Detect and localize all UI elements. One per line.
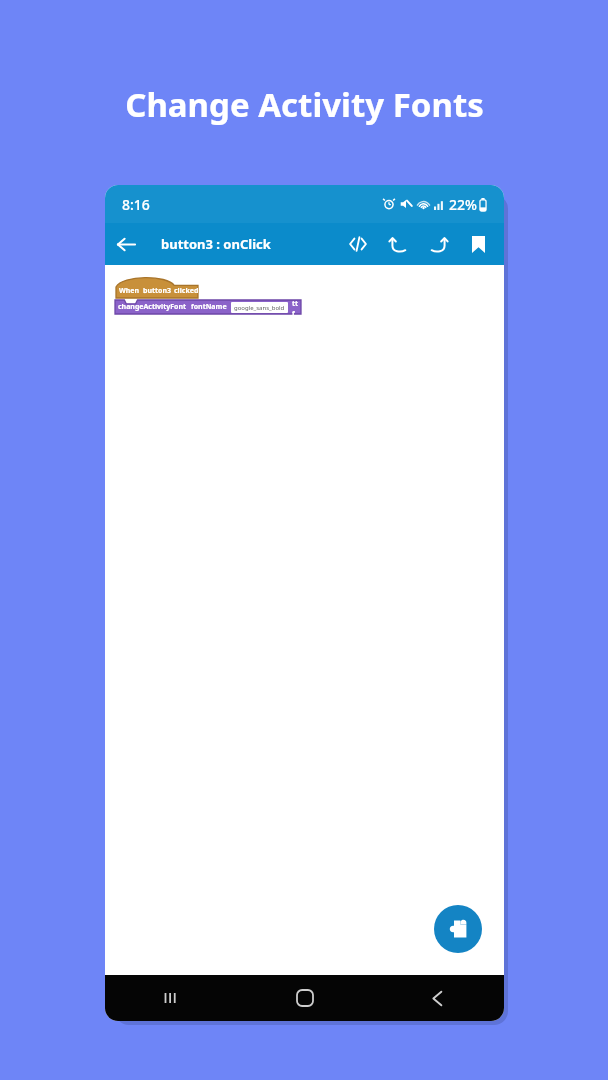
staticText: button3	[143, 286, 171, 296]
button[interactable]: Back	[371, 975, 504, 1021]
staticText: When	[119, 286, 140, 296]
button[interactable]: Home	[238, 975, 371, 1021]
staticText: fontName	[191, 302, 227, 312]
button[interactable]: When	[114, 279, 200, 298]
button[interactable]: Back	[105, 223, 147, 265]
staticText: google_sans_bold	[234, 304, 285, 312]
staticText: clicked	[174, 286, 199, 296]
button[interactable]: changeActivityFont	[114, 299, 302, 315]
staticText: 22%	[449, 195, 477, 214]
staticText: Change Activity Fonts	[125, 82, 484, 127]
button[interactable]: View code	[338, 224, 378, 264]
staticText: changeActivityFont	[118, 302, 187, 312]
button[interactable]: Undo	[378, 224, 418, 264]
button[interactable]: Add block	[434, 905, 482, 953]
staticText: ttf	[292, 299, 299, 315]
staticText: button3 : onClick	[161, 235, 271, 253]
staticText: 8:16	[122, 195, 150, 214]
button[interactable]: Redo	[418, 224, 458, 264]
button[interactable]: Recent apps	[105, 975, 238, 1021]
button[interactable]: Bookmark	[458, 224, 498, 264]
